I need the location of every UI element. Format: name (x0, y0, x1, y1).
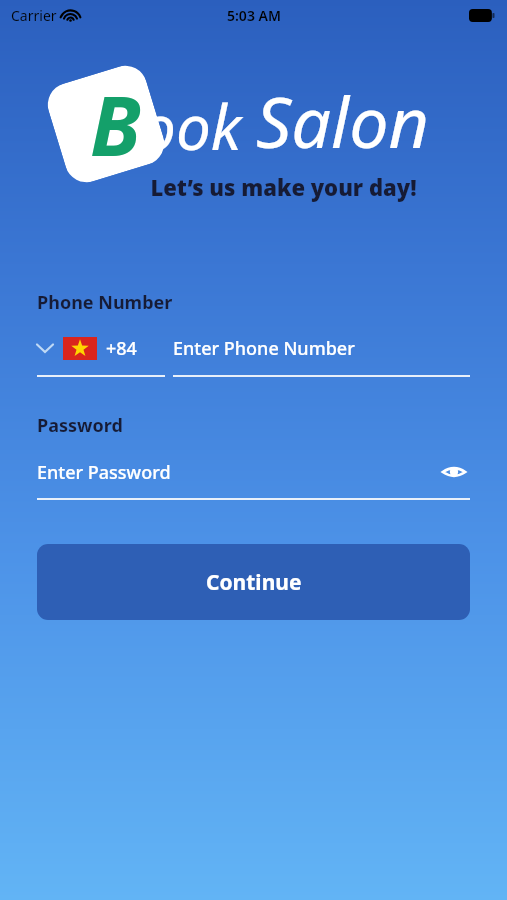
staticText: Continue (206, 568, 302, 597)
staticText: ook (141, 84, 242, 168)
staticText: Carrier (11, 6, 57, 25)
staticText: 5:03 AM (227, 6, 281, 25)
staticText: B (90, 68, 141, 168)
staticText: Enter Phone Number (173, 336, 355, 361)
button[interactable]: Show password (438, 458, 470, 486)
staticText: Phone Number (37, 290, 173, 315)
staticText: +84 (106, 336, 137, 361)
button[interactable]: Enter Password (37, 458, 470, 500)
staticText: Salon (256, 73, 430, 168)
button[interactable]: +84 (37, 333, 165, 377)
staticText: Password (37, 413, 123, 438)
button[interactable]: Enter Phone Number (173, 333, 470, 377)
staticText: Enter Password (37, 460, 438, 485)
button[interactable]: Continue (37, 544, 470, 620)
staticText: Let’s us make your day! (150, 172, 417, 202)
